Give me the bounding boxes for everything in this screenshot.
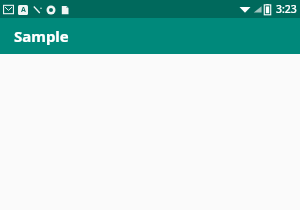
staticText: Sample <box>14 26 69 46</box>
staticText: 3:23 <box>276 2 297 16</box>
staticText: A <box>21 5 26 15</box>
